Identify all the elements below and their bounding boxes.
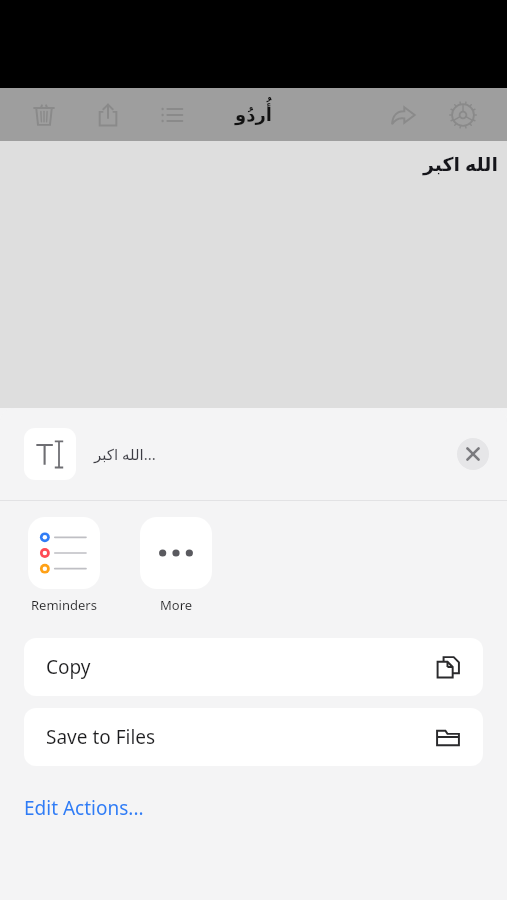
staticText: Copy xyxy=(46,654,91,680)
staticText: الله اكبر xyxy=(423,151,499,177)
button[interactable]: Share xyxy=(86,93,130,137)
staticText: Reminders xyxy=(31,596,97,614)
button[interactable]: More xyxy=(136,517,216,614)
staticText: أُردُو xyxy=(235,104,272,125)
staticText: More xyxy=(160,596,193,614)
button[interactable]: Edit Actions... xyxy=(0,786,507,830)
staticText: الله اكبر... xyxy=(94,444,156,464)
button[interactable]: Save to Files xyxy=(24,708,483,766)
button[interactable]: Delete xyxy=(22,93,66,137)
button[interactable]: List xyxy=(150,93,194,137)
staticText: Edit Actions... xyxy=(24,795,144,821)
button[interactable]: Close xyxy=(457,438,489,470)
button[interactable]: Forward xyxy=(381,93,425,137)
button[interactable]: Reminders xyxy=(24,517,104,614)
staticText: Save to Files xyxy=(46,724,156,750)
button[interactable]: Settings xyxy=(441,93,485,137)
button[interactable]: Copy xyxy=(24,638,483,696)
